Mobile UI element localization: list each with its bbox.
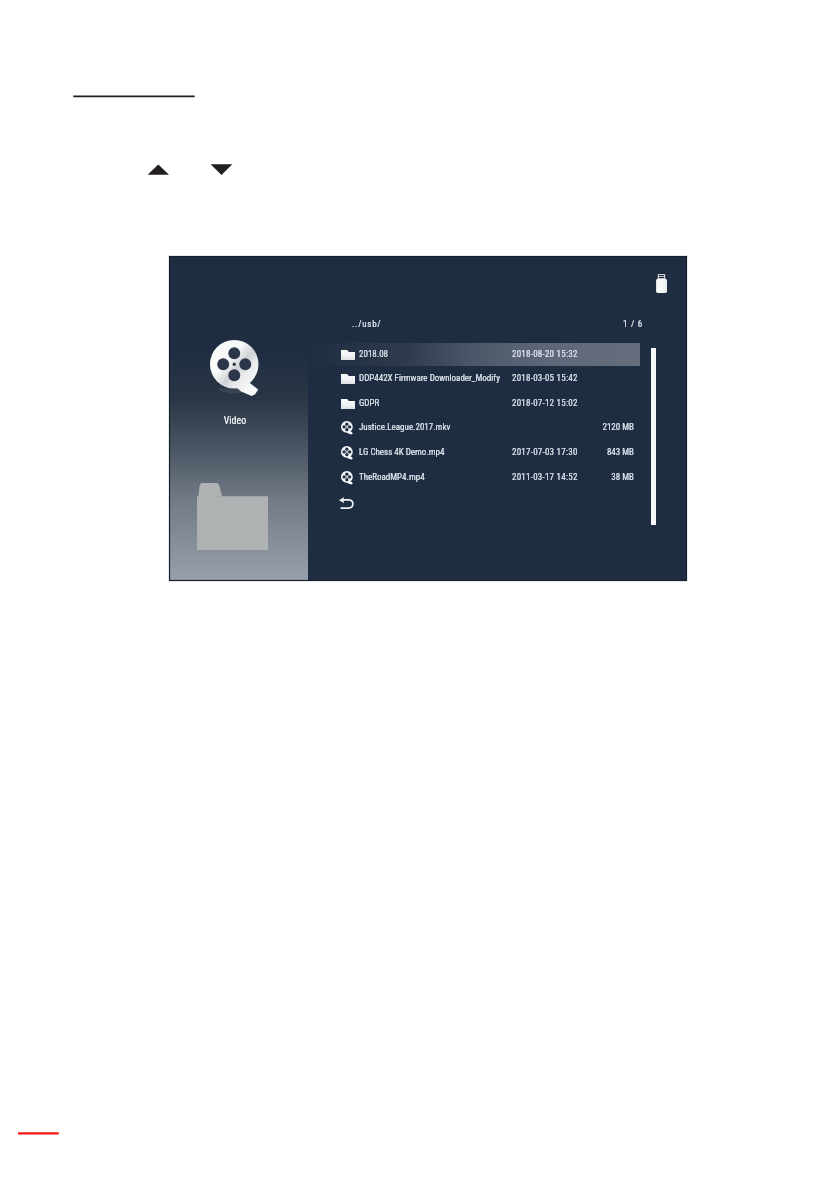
button[interactable]: TheRoadMP4.mp4 xyxy=(308,466,640,489)
staticText: TheRoadMP4.mp4 xyxy=(359,472,425,483)
staticText: 38 MB xyxy=(556,472,634,483)
staticText: 2017-07-03 17:30 xyxy=(512,447,578,458)
staticText: DDP442X Firmware Downloader_Modify xyxy=(359,373,500,384)
button[interactable]: LG Chess 4K Demo.mp4 xyxy=(308,441,640,464)
staticText: 2018-03-05 15:42 xyxy=(512,373,578,384)
button[interactable]: 2018.08 xyxy=(308,343,640,366)
staticText: LG Chess 4K Demo.mp4 xyxy=(359,447,445,458)
button[interactable]: USB storage xyxy=(656,274,667,293)
staticText: 843 MB xyxy=(556,447,634,458)
staticText: Justice.League.2017.mkv xyxy=(359,422,451,433)
staticText: Video xyxy=(205,415,265,427)
staticText: 2018-07-12 15:02 xyxy=(512,398,578,409)
staticText: 2018-08-20 15:32 xyxy=(512,349,578,360)
staticText xyxy=(556,349,634,360)
button[interactable]: Justice.League.2017.mkv xyxy=(308,416,640,439)
button[interactable]: DDP442X Firmware Downloader_Modify xyxy=(308,367,640,390)
button[interactable]: Go back xyxy=(339,497,354,509)
staticText: 1 / 6 xyxy=(583,319,643,330)
staticText: 2120 MB xyxy=(556,422,634,433)
staticText: 2018.08 xyxy=(359,349,389,360)
button[interactable]: GDPR xyxy=(308,392,640,415)
staticText: 2011-03-17 14:52 xyxy=(512,472,578,483)
staticText xyxy=(556,398,634,409)
staticText: ../usb/ xyxy=(352,319,382,330)
staticText xyxy=(556,373,634,384)
button[interactable] xyxy=(169,256,308,581)
staticText: GDPR xyxy=(359,398,380,409)
